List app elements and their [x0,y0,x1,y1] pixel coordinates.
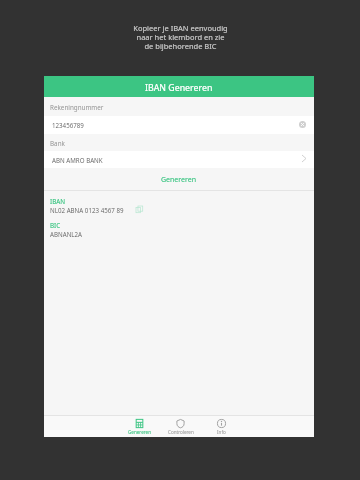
staticText: Kopieer je IBAN eenvoudig naar het klemb… [133,23,228,51]
button[interactable]: 123456789 [44,116,314,134]
button[interactable]: Genereren [44,172,314,188]
staticText: IBAN [50,197,66,206]
staticText: ABNANL2A [50,230,83,238]
staticText: IBAN Genereren [145,82,213,94]
button[interactable]: Kies bank [300,154,308,162]
staticText: Rekeningnummer [50,103,104,112]
staticText: BIC [50,221,61,230]
button[interactable]: Info [201,419,242,435]
staticText: Bank [50,139,65,148]
staticText: Genereren [161,175,197,185]
staticText: ABN AMRO BANK [52,156,103,164]
button[interactable]: Controleren [160,419,201,435]
button[interactable]: Kopieer IBAN naar klembord [134,204,145,215]
button[interactable]: ABN AMRO BANK [44,151,314,168]
staticText: Controleren [168,429,194,435]
staticText: Genereren [128,429,151,435]
staticText: NL02 ABNA 0123 4567 89 [50,206,124,214]
button[interactable]: Wis rekeningnummer [298,120,306,128]
button[interactable]: IBAN Genereren [44,76,314,97]
button[interactable]: Genereren [119,419,160,435]
staticText: 123456789 [52,121,84,129]
staticText: Info [217,429,226,435]
